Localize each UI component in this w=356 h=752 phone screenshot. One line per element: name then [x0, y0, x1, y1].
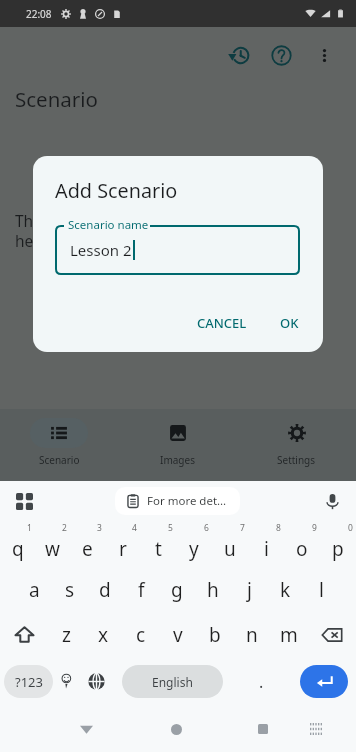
- staticText: 4: [132, 522, 137, 534]
- staticText: e: [82, 536, 93, 562]
- button[interactable]: a: [17, 567, 52, 612]
- staticText: Lesson 2: [70, 240, 132, 260]
- staticText: OK: [280, 314, 299, 332]
- button[interactable]: 2: [35, 521, 70, 567]
- button[interactable]: Back: [71, 714, 101, 744]
- staticText: k: [280, 577, 291, 603]
- staticText: 7: [240, 522, 245, 534]
- staticText: Add Scenario: [55, 177, 178, 204]
- staticText: z: [62, 622, 71, 648]
- button[interactable]: 1: [0, 521, 35, 567]
- button[interactable]: 0: [320, 521, 356, 567]
- button[interactable]: For more det…: [115, 487, 240, 515]
- staticText: h: [207, 577, 219, 603]
- button[interactable]: History: [219, 35, 259, 75]
- staticText: 22:08: [26, 7, 52, 21]
- button[interactable]: 6: [176, 521, 212, 567]
- button[interactable]: Scenario: [0, 409, 118, 467]
- button[interactable]: k: [267, 567, 303, 612]
- button[interactable]: 3: [70, 521, 105, 567]
- staticText: 6: [204, 522, 209, 534]
- button[interactable]: Home: [161, 714, 191, 744]
- staticText: u: [224, 536, 236, 562]
- staticText: 1: [27, 522, 32, 534]
- staticText: There are no scenarios here: [15, 210, 181, 252]
- button[interactable]: f: [123, 567, 159, 612]
- button[interactable]: l: [303, 567, 339, 612]
- button[interactable]: CANCEL: [187, 306, 257, 340]
- staticText: Settings: [277, 453, 316, 467]
- button[interactable]: Help: [261, 35, 301, 75]
- staticText: 8: [276, 522, 281, 534]
- staticText: 9: [312, 522, 317, 534]
- staticText: f: [138, 577, 145, 603]
- button[interactable]: 8: [248, 521, 284, 567]
- staticText: ?123: [15, 673, 43, 691]
- staticText: m: [280, 622, 298, 648]
- staticText: Images: [160, 453, 195, 467]
- staticText: Scenario: [39, 453, 80, 467]
- staticText: t: [155, 536, 162, 562]
- button[interactable]: b: [196, 612, 233, 657]
- staticText: j: [247, 577, 252, 603]
- button[interactable]: Backspace: [307, 612, 356, 657]
- button[interactable]: h: [195, 567, 231, 612]
- button[interactable]: c: [122, 612, 159, 657]
- staticText: x: [98, 622, 109, 648]
- button[interactable]: ?123: [4, 665, 53, 698]
- staticText: v: [173, 622, 183, 648]
- button[interactable]: Change language: [81, 665, 112, 698]
- staticText: b: [209, 622, 221, 648]
- staticText: CANCEL: [197, 314, 247, 332]
- button[interactable]: Voice input: [318, 487, 346, 515]
- button[interactable]: Shift: [0, 612, 48, 657]
- staticText: r: [119, 536, 127, 562]
- staticText: d: [99, 577, 111, 603]
- staticText: Scenario name: [68, 217, 149, 233]
- staticText: 0: [348, 522, 353, 534]
- button[interactable]: x: [85, 612, 122, 657]
- staticText: q: [12, 536, 24, 562]
- staticText: 2: [62, 522, 67, 534]
- button[interactable]: v: [159, 612, 196, 657]
- button[interactable]: s: [52, 567, 87, 612]
- staticText: n: [246, 622, 258, 648]
- button[interactable]: Switch keyboard: [301, 714, 331, 744]
- button[interactable]: Recents: [248, 714, 278, 744]
- button[interactable]: z: [48, 612, 85, 657]
- button[interactable]: 5: [140, 521, 176, 567]
- staticText: a: [29, 577, 40, 603]
- button[interactable]: .: [223, 665, 300, 698]
- staticText: English: [152, 674, 193, 690]
- staticText: l: [319, 577, 324, 603]
- button[interactable]: m: [270, 612, 307, 657]
- button[interactable]: g: [159, 567, 195, 612]
- staticText: i: [264, 536, 269, 562]
- button[interactable]: English: [122, 665, 223, 698]
- staticText: y: [189, 536, 199, 562]
- button[interactable]: n: [233, 612, 270, 657]
- button[interactable]: j: [231, 567, 267, 612]
- staticText: s: [65, 577, 75, 603]
- button[interactable]: OK: [270, 306, 309, 340]
- staticText: 3: [97, 522, 102, 534]
- button[interactable]: More options: [304, 35, 344, 75]
- staticText: g: [171, 577, 183, 603]
- button[interactable]: d: [87, 567, 123, 612]
- staticText: 5: [168, 522, 173, 534]
- button[interactable]: 7: [212, 521, 248, 567]
- staticText: w: [45, 536, 60, 562]
- staticText: o: [296, 536, 308, 562]
- button[interactable]: Toolbar: [10, 487, 38, 515]
- staticText: c: [136, 622, 146, 648]
- button[interactable]: 9: [284, 521, 320, 567]
- button[interactable]: Images: [118, 409, 237, 467]
- button[interactable]: Settings: [237, 409, 356, 467]
- button[interactable]: 4: [105, 521, 140, 567]
- button[interactable]: Emoji: [53, 665, 81, 698]
- button[interactable]: Enter: [300, 665, 348, 698]
- staticText: For more det…: [147, 493, 227, 509]
- staticText: .: [259, 671, 264, 693]
- staticText: Scenario: [15, 85, 98, 113]
- staticText: p: [332, 536, 344, 562]
